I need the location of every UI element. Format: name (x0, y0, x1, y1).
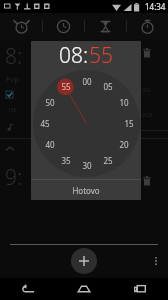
staticText: 30 (82, 160, 92, 171)
staticText: SO (143, 86, 151, 94)
staticText: Pop (6, 75, 19, 85)
staticText: 00 (82, 76, 92, 87)
button[interactable]: Home (56, 278, 112, 300)
staticText: 55 (61, 81, 71, 92)
button[interactable]: Recents (112, 278, 168, 300)
button[interactable]: More options (148, 253, 164, 269)
button[interactable]: Back (0, 278, 56, 300)
button[interactable]: Hotovo (31, 180, 141, 200)
staticText: 20 (119, 139, 129, 150)
staticText: NE (9, 106, 17, 114)
staticText: Hotovo (72, 185, 100, 196)
staticText: 15 (124, 118, 134, 129)
staticText: 25 (103, 155, 113, 166)
button[interactable]: Minute picker (33, 70, 140, 177)
staticText: 05 (103, 81, 113, 92)
staticText: 40 (45, 139, 55, 150)
button[interactable]: Alarm (0, 13, 42, 39)
button[interactable]: Clock (43, 13, 84, 39)
button[interactable]: Timer (85, 13, 126, 39)
button[interactable]: Stopwatch (127, 13, 168, 39)
staticText: ACE (142, 111, 153, 119)
staticText: 9: (5, 163, 23, 192)
staticText: 14:34 (145, 1, 166, 12)
staticText: 10 (119, 97, 129, 108)
button[interactable]: Add alarm (71, 248, 97, 274)
button[interactable]: 55 (89, 41, 113, 67)
staticText: 35 (61, 155, 71, 166)
staticText: 45 (40, 118, 50, 129)
staticText: 50 (45, 97, 55, 108)
button[interactable]: 08: (59, 41, 89, 67)
staticText: 8: (5, 42, 23, 71)
